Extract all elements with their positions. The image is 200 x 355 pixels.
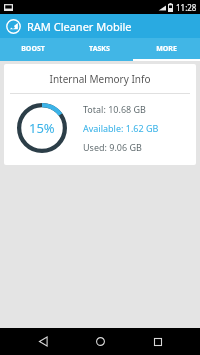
- button[interactable]: MORE: [133, 38, 200, 59]
- staticText: Available: 1.62 GB: [83, 122, 159, 134]
- staticText: Total: 10.68 GB: [83, 103, 146, 115]
- button[interactable]: Internal Memory Info: [4, 64, 196, 165]
- staticText: 15%: [29, 119, 55, 137]
- button[interactable]: TASKS: [66, 38, 133, 59]
- staticText: BOOST: [21, 44, 45, 54]
- staticText: Used: 9.06 GB: [83, 141, 142, 153]
- staticText: Internal Memory Info: [4, 72, 196, 86]
- button[interactable]: Home: [85, 328, 115, 355]
- staticText: RAM Cleaner Mobile: [27, 19, 132, 34]
- staticText: MORE: [156, 44, 177, 54]
- button[interactable]: Recent apps: [143, 328, 173, 355]
- button[interactable]: BOOST: [0, 38, 66, 59]
- button[interactable]: Back: [28, 328, 58, 355]
- staticText: 11:28: [176, 2, 197, 13]
- other: App icon: [6, 19, 21, 34]
- staticText: TASKS: [89, 44, 110, 54]
